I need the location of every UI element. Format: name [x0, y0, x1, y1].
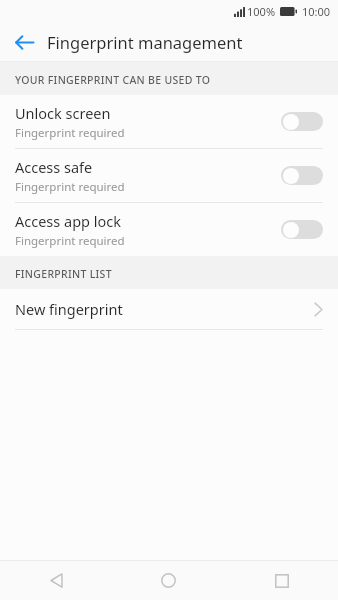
button[interactable]: Recents	[225, 561, 338, 600]
button[interactable]: Back	[6, 24, 42, 60]
button[interactable]: Unlock screen	[0, 95, 338, 148]
staticText: Fingerprint management	[47, 31, 243, 53]
staticText: YOUR FINGERPRINT CAN BE USED TO	[15, 73, 211, 87]
staticText: Fingerprint required	[15, 179, 125, 195]
staticText: Access safe	[15, 157, 93, 177]
staticText: New fingerprint	[15, 299, 314, 319]
button[interactable]: Access safe	[0, 149, 338, 202]
staticText: Access app lock	[15, 211, 121, 231]
button[interactable]: Toggle	[281, 166, 323, 185]
button[interactable]: Access app lock	[0, 203, 338, 256]
staticText: Unlock screen	[15, 103, 111, 123]
staticText: 10:00	[302, 4, 331, 19]
button[interactable]: Home	[112, 561, 225, 600]
button[interactable]: Toggle	[281, 220, 323, 239]
button[interactable]: New fingerprint	[0, 289, 338, 329]
staticText: FINGERPRINT LIST	[15, 267, 112, 281]
button[interactable]: Toggle	[281, 112, 323, 131]
staticText: 100%	[247, 4, 276, 19]
staticText: Fingerprint required	[15, 233, 125, 249]
staticText: Fingerprint required	[15, 125, 125, 141]
button[interactable]: Back	[0, 561, 112, 600]
